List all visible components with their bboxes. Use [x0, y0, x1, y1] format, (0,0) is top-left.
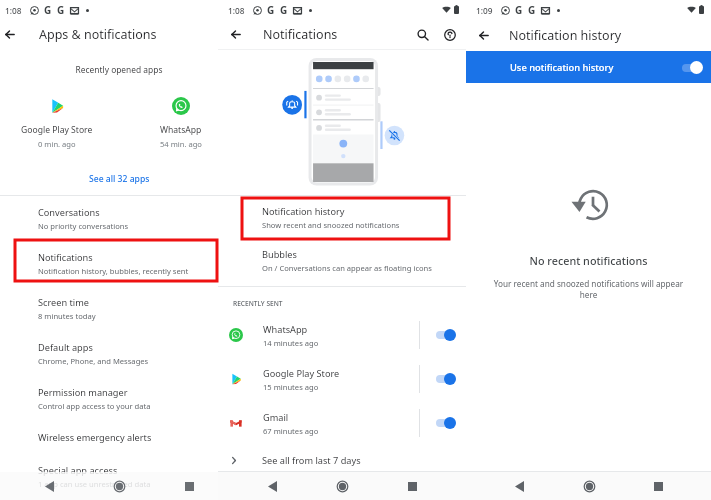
button[interactable]: Bubbles — [218, 239, 466, 282]
button[interactable]: Home — [328, 472, 356, 500]
staticText: 15 minutes ago — [263, 382, 319, 392]
staticText: Gmail — [263, 411, 289, 424]
button[interactable]: Special app access — [0, 454, 218, 499]
staticText: Use notification history — [510, 61, 682, 74]
staticText: RECENTLY SENT — [233, 299, 283, 308]
button[interactable]: Back — [505, 472, 533, 500]
staticText: 67 minutes ago — [263, 426, 319, 436]
staticText: Show recent and snoozed notifications — [262, 220, 400, 230]
button[interactable]: Back — [218, 19, 253, 49]
staticText: Notification history — [262, 205, 345, 218]
staticText: Permission manager — [38, 386, 128, 399]
button[interactable]: Recents — [644, 472, 672, 500]
staticText: Conversations — [38, 206, 100, 219]
staticText: Bubbles — [262, 248, 297, 261]
button[interactable]: WhatsApp — [218, 313, 466, 357]
staticText: Notifications — [38, 251, 93, 264]
button[interactable]: Recents — [175, 472, 203, 500]
staticText: Your recent and snoozed notifications wi… — [492, 278, 685, 300]
staticText: G — [267, 3, 275, 17]
staticText: 1 app can use unrestricted data — [38, 479, 151, 489]
staticText: On / Conversations can appear as floatin… — [262, 263, 432, 273]
staticText: Recently opened apps — [0, 64, 218, 75]
button[interactable]: Back — [0, 19, 25, 49]
button[interactable]: Wireless emergency alerts — [0, 421, 218, 454]
staticText: G — [280, 3, 288, 17]
staticText: Default apps — [38, 341, 93, 354]
staticText: Special app access — [38, 464, 118, 477]
staticText: G — [44, 3, 52, 17]
button[interactable]: Back — [466, 20, 501, 51]
button[interactable]: See all 32 apps — [0, 173, 218, 185]
button[interactable]: Permission manager — [0, 376, 218, 421]
button[interactable]: Default apps — [0, 331, 218, 376]
staticText: G — [528, 3, 536, 17]
button[interactable]: Google Play Store — [218, 357, 466, 401]
staticText: Notifications — [263, 26, 409, 43]
staticText: G — [57, 3, 65, 17]
staticText: Apps & notifications — [39, 26, 209, 43]
staticText: 8 minutes today — [38, 311, 96, 321]
staticText: Chrome, Phone, and Messages — [38, 356, 149, 366]
staticText: 1:08 — [228, 5, 245, 16]
staticText: Notification history, bubbles, recently … — [38, 266, 189, 276]
staticText: Google Play Store — [21, 124, 93, 136]
staticText: Google Play Store — [263, 367, 340, 380]
button[interactable]: Screen time — [0, 286, 218, 331]
button[interactable]: Search — [409, 21, 436, 48]
staticText: Wireless emergency alerts — [38, 431, 152, 444]
staticText: WhatsApp — [160, 124, 202, 136]
button[interactable]: Help — [436, 21, 463, 48]
button[interactable]: Back — [258, 472, 286, 500]
button[interactable]: Back — [35, 472, 63, 500]
staticText: 54 min. ago — [160, 139, 202, 149]
button[interactable]: Google Play Store — [0, 97, 119, 149]
staticText: WhatsApp — [263, 323, 308, 336]
button[interactable]: See all from last 7 days — [218, 445, 466, 475]
button[interactable]: Recents — [398, 472, 426, 500]
button[interactable]: WhatsApp — [119, 97, 218, 149]
button[interactable]: Gmail — [218, 401, 466, 445]
button[interactable]: Home — [105, 472, 133, 500]
button[interactable]: Use notification history — [466, 51, 711, 83]
staticText: 1:09 — [476, 5, 493, 16]
button[interactable]: Notifications — [0, 241, 218, 286]
staticText: No recent notifications — [466, 253, 711, 268]
button[interactable]: Conversations — [0, 196, 218, 241]
staticText: Screen time — [38, 296, 89, 309]
button[interactable]: Notification history — [218, 196, 466, 239]
staticText: Notification history — [509, 27, 711, 44]
staticText: See all 32 apps — [89, 173, 150, 185]
staticText: 0 min. ago — [38, 139, 76, 149]
staticText: Control app access to your data — [38, 401, 151, 411]
staticText: No priority conversations — [38, 221, 129, 231]
staticText: 1:08 — [5, 5, 22, 16]
staticText: See all from last 7 days — [262, 454, 361, 467]
button[interactable]: Home — [575, 472, 603, 500]
staticText: G — [515, 3, 523, 17]
staticText: 14 minutes ago — [263, 338, 319, 348]
